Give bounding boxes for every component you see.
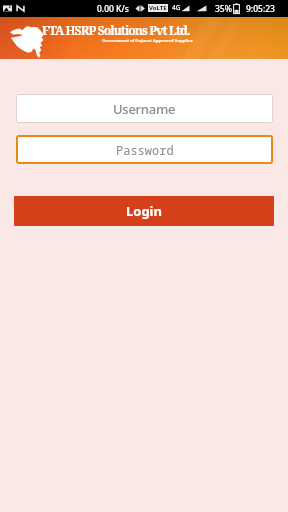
- button[interactable]: Username: [16, 94, 273, 123]
- staticText: FTA HSRP Solutions Pvt Ltd.: [42, 22, 190, 39]
- staticText: 9:05:23: [246, 3, 275, 15]
- staticText: Username: [113, 100, 176, 118]
- staticText: Government of Gujarat Approved Supplier: [102, 38, 193, 44]
- staticText: VoLTE: [149, 4, 167, 12]
- staticText: 0.00 K/s: [97, 3, 129, 15]
- staticText: 4G: [172, 3, 181, 12]
- button[interactable]: Login: [14, 196, 274, 226]
- button[interactable]: Password: [16, 135, 273, 164]
- staticText: 35%: [215, 3, 232, 15]
- staticText: Login: [126, 202, 162, 220]
- staticText: Password: [116, 142, 174, 158]
